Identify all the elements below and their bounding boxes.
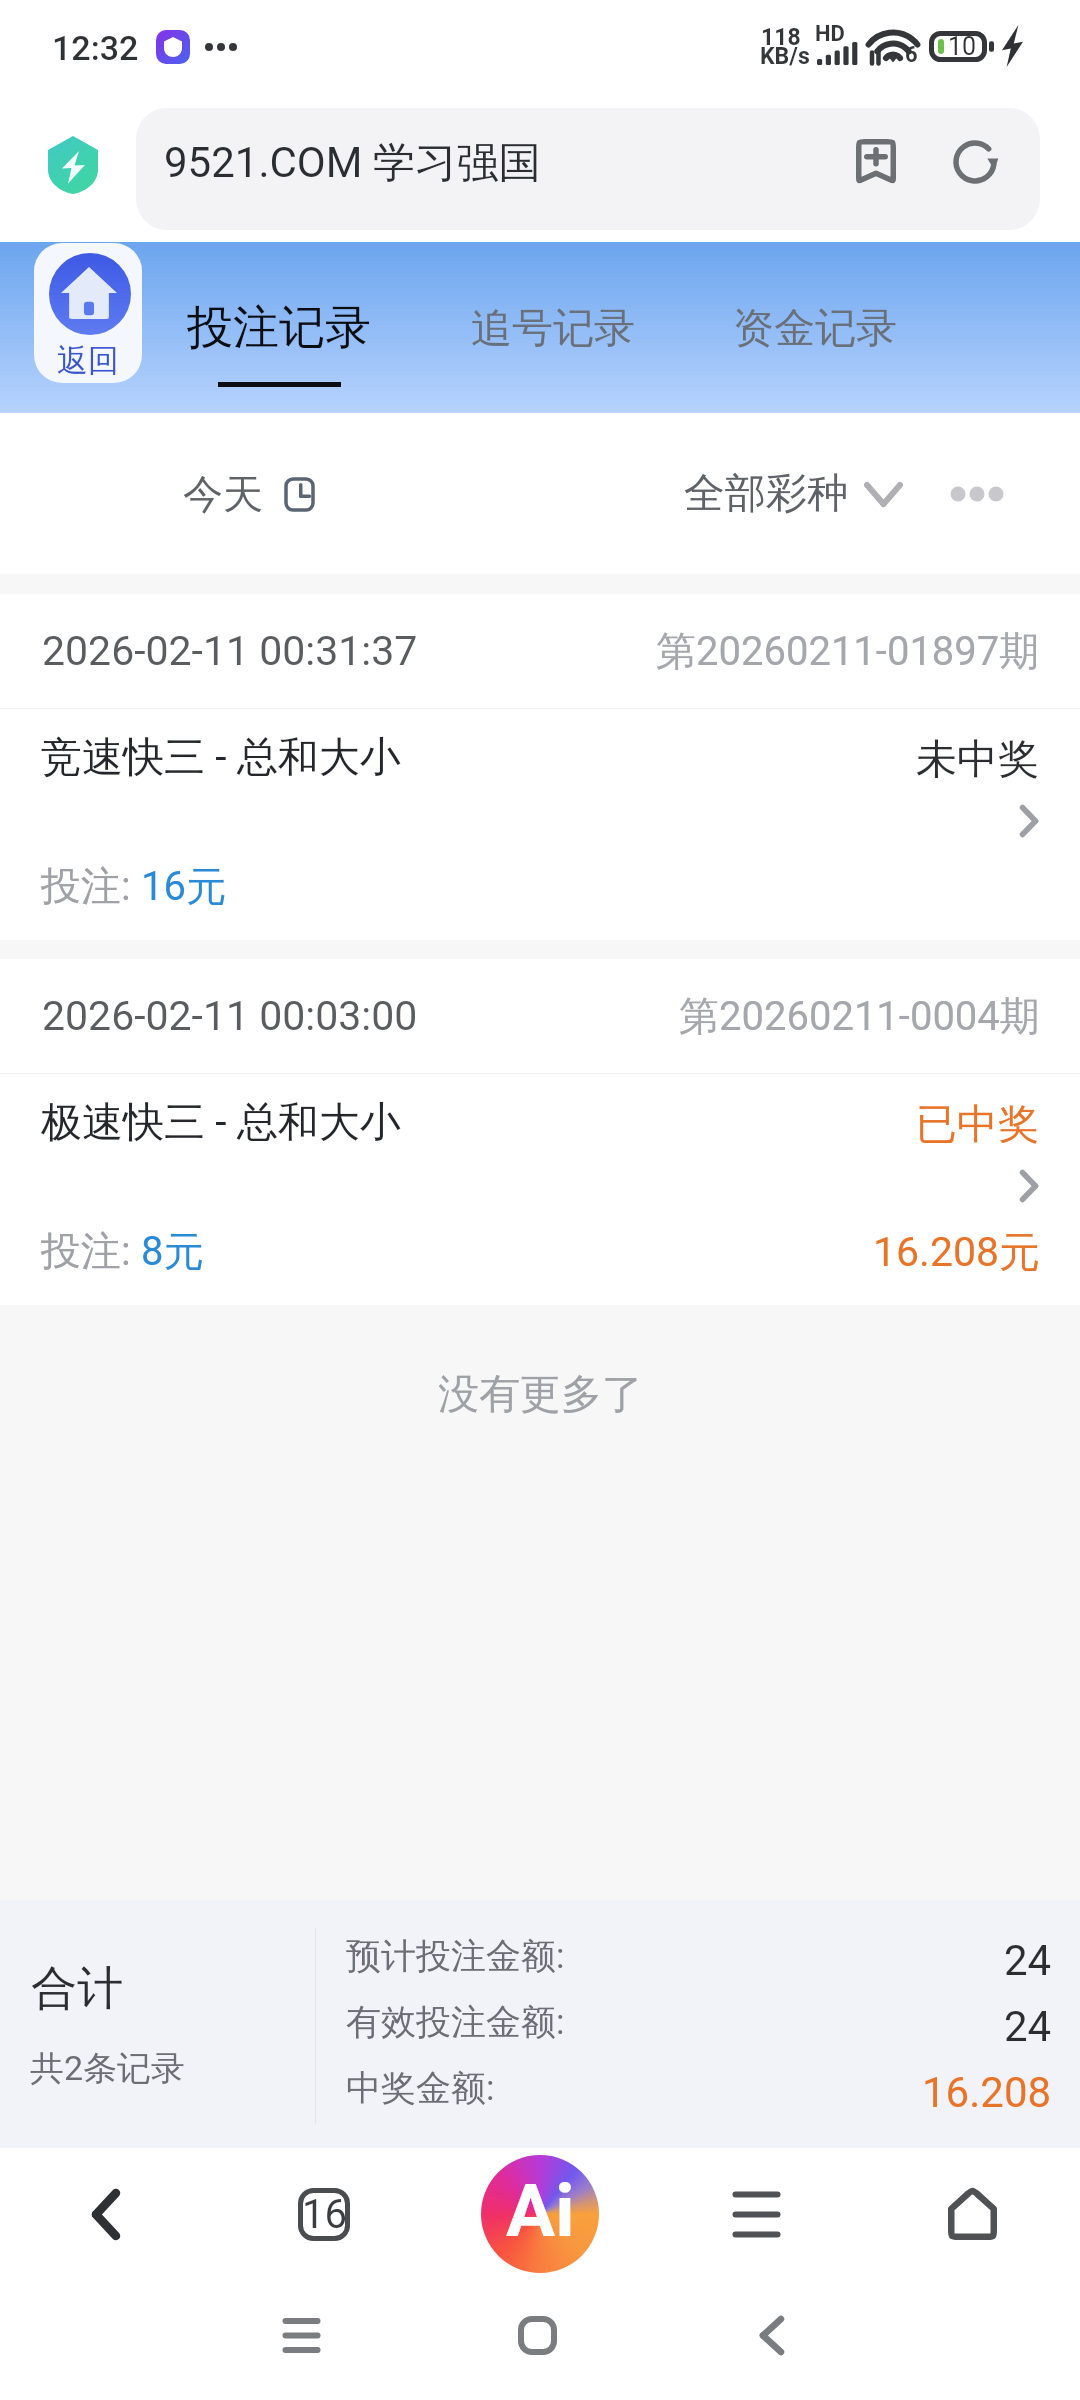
- staticText: 第20260211-0004期: [679, 991, 1040, 1041]
- staticText: 共2条记录: [30, 2047, 186, 2090]
- staticText: 没有更多了: [438, 1369, 643, 1421]
- button[interactable]: Home: [927, 2169, 1017, 2259]
- staticText: 中奖金额:: [346, 2066, 495, 2110]
- button[interactable]: 2026-02-11 00:03:00: [0, 959, 1080, 1305]
- staticText: 第20260211-01897期: [656, 626, 1040, 676]
- button[interactable]: 今天: [183, 469, 315, 519]
- button[interactable]: Reload: [953, 140, 1003, 190]
- button[interactable]: Add bookmark: [856, 139, 906, 189]
- button[interactable]: Recent apps: [258, 2292, 344, 2378]
- staticText: 24: [1004, 1936, 1052, 1985]
- staticText: 2026-02-11 00:31:37: [42, 627, 418, 675]
- staticText: 118: [761, 24, 801, 51]
- staticText: 6: [905, 42, 918, 68]
- button[interactable]: 资金记录: [733, 303, 897, 355]
- button[interactable]: 投注记录: [187, 299, 371, 357]
- staticText: 竞速快三 - 总和大小: [41, 732, 401, 784]
- button[interactable]: 追号记录: [471, 303, 635, 355]
- staticText: 已中奖: [916, 1099, 1039, 1151]
- staticText: 预计投注金额:: [346, 1934, 565, 1978]
- button[interactable]: Menu: [711, 2169, 801, 2259]
- staticText: Ai: [506, 2168, 575, 2254]
- button[interactable]: 返回: [34, 243, 142, 383]
- button[interactable]: Back: [729, 2292, 815, 2378]
- staticText: 16.208: [922, 2068, 1052, 2117]
- button[interactable]: 9521.COM 学习强国: [136, 108, 1040, 230]
- staticText: 今天: [183, 469, 263, 519]
- staticText: 12:32: [52, 28, 139, 68]
- button[interactable]: Home: [494, 2292, 580, 2378]
- staticText: 投注:: [41, 1226, 141, 1276]
- staticText: 16.208元: [873, 1227, 1041, 1279]
- button[interactable]: Ai assistant: [481, 2155, 599, 2273]
- staticText: 极速快三 - 总和大小: [41, 1097, 401, 1149]
- staticText: 投注:: [41, 861, 141, 911]
- staticText: 16: [302, 2191, 347, 2238]
- button[interactable]: Tabs: 16: [279, 2169, 369, 2259]
- button[interactable]: More options: [940, 469, 1016, 519]
- staticText: 8元: [141, 1226, 204, 1276]
- staticText: 10: [948, 32, 977, 61]
- staticText: 24: [1004, 2002, 1052, 2051]
- staticText: 2026-02-11 00:03:00: [42, 992, 418, 1040]
- staticText: 返回: [57, 341, 119, 380]
- staticText: 全部彩种: [684, 468, 848, 520]
- button[interactable]: Back: [61, 2169, 151, 2259]
- button[interactable]: 全部彩种: [684, 468, 903, 520]
- staticText: 合计: [31, 1960, 123, 2018]
- staticText: 未中奖: [916, 734, 1039, 786]
- staticText: 有效投注金额:: [346, 2000, 565, 2044]
- staticText: 16元: [141, 861, 226, 911]
- staticText: HD: [815, 21, 845, 47]
- staticText: 9521.COM 学习强国: [164, 137, 541, 190]
- button[interactable]: 2026-02-11 00:31:37: [0, 594, 1080, 940]
- staticText: KB/s: [760, 43, 810, 70]
